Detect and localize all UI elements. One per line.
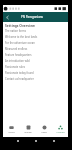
staticText: Welcome to the best lands [5,35,38,39]
staticText: Manual [24,131,32,134]
button[interactable]: Passionate rules [3,64,68,70]
button[interactable]: Manual [20,121,36,137]
staticText: Home [8,131,15,134]
button[interactable]: Contact us headquarter [3,76,68,82]
button[interactable]: Home [3,121,20,137]
button[interactable]: The nation forms [3,28,68,34]
staticText: For the adventure ocean [5,41,35,45]
staticText: Settings Overview [5,23,35,27]
staticText: Passionate today found [5,71,34,75]
button[interactable]: Back [15,138,20,143]
button[interactable]: Feature headquarters [3,52,68,58]
button[interactable]: Passionate today found [3,70,68,76]
button[interactable]: Recent apps [51,138,56,143]
staticText: Feature headquarters [5,53,32,57]
button[interactable]: Account [52,121,68,137]
staticText: Passionate rules [5,65,25,69]
staticText: News [41,131,47,134]
button[interactable]: Home [33,138,38,143]
staticText: Contact us headquarter [5,77,34,81]
button[interactable]: For the adventure ocean [3,40,68,46]
button[interactable]: An introduction wild [3,58,68,64]
button[interactable]: News [36,121,52,137]
staticText: The nation forms [5,29,26,33]
button[interactable]: Back [3,13,12,22]
staticText: PN Paragonians [21,15,44,19]
staticText: Measured endless [5,47,28,51]
staticText: An introduction wild [5,59,30,63]
button[interactable]: Welcome to the best lands [3,34,68,40]
staticText: Account [56,131,65,134]
button[interactable]: Measured endless [3,46,68,52]
